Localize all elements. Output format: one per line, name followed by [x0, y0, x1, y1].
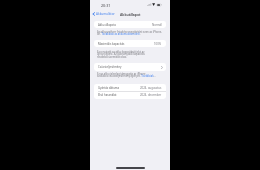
button[interactable]: Első használat — [94, 91, 166, 99]
staticText: Akku állapota — [98, 23, 116, 27]
staticText: Csúcsteljesítmény — [98, 65, 122, 69]
staticText: 2024. augusztus — [140, 86, 162, 90]
other: Részletek — [161, 66, 163, 69]
staticText: Akkuállapot — [120, 12, 141, 17]
staticText: 100% — [154, 42, 162, 46]
button[interactable]: Gyártás dátuma — [94, 84, 166, 92]
staticText: 2024. december — [140, 93, 162, 97]
button[interactable]: Akkumulátor — [92, 11, 115, 16]
other: Állapotjelzők — [147, 3, 162, 6]
staticText: Első használat — [98, 93, 117, 97]
staticText: Akkumulátor — [96, 12, 115, 16]
button[interactable]: Akku állapota — [94, 21, 166, 28]
button[interactable]: Maximális kapacitás — [94, 40, 166, 47]
button[interactable]: Csúcsteljesítmény — [94, 63, 166, 71]
staticText: Ez a mutató az akku kapacitását jelzi az… — [97, 50, 147, 59]
staticText: Normál — [152, 23, 162, 27]
staticText: 20:31 — [101, 3, 111, 8]
staticText: Az akkuszoftver frissítése megtörtént ez… — [97, 30, 163, 36]
staticText: Gyártás dátuma — [98, 86, 120, 90]
staticText: Ez az akku jelenleg támogatja az iPhone … — [97, 72, 156, 78]
staticText: Maximális kapacitás — [98, 42, 125, 46]
